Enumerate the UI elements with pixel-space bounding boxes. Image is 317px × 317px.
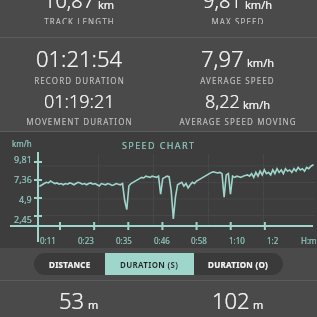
staticText: TRACK LENGTH [44,16,115,24]
staticText: m [253,297,264,312]
staticText: km/h [243,97,271,112]
staticText: 0:58 [191,235,207,246]
staticText: 102 [212,285,250,315]
staticText: DURATION (O) [208,259,269,270]
staticText: km/h [12,138,32,149]
staticText: 0:46 [154,235,170,246]
staticText: 0:23 [78,235,94,246]
staticText: 9,81 [203,0,242,14]
button[interactable]: DISTANCE [34,253,105,275]
staticText: 0:11 [40,235,56,246]
staticText: DISTANCE [49,259,91,270]
staticText: DURATION (S) [120,259,179,270]
staticText: 1:2 [267,235,279,246]
staticText: 8,22 [205,89,240,114]
staticText: AVERAGE SPEED MOVING [179,116,297,127]
staticText: 01:19:21 [44,89,115,114]
button[interactable]: DURATION (O) [194,253,283,275]
staticText: 0:35 [116,235,132,246]
button[interactable]: DURATION (S) [105,253,194,275]
staticText: MOVEMENT DURATION [26,116,133,127]
staticText: 2,45 [14,213,32,225]
staticText: SPEED CHART [122,139,196,151]
staticText: 7,97 [201,43,244,73]
staticText: 53 [59,285,85,315]
staticText: 10,87 [44,0,95,14]
staticText: km/h [245,0,273,12]
staticText: H:m [301,235,317,246]
staticText: m [88,297,99,312]
staticText: 7,36 [14,173,32,185]
staticText: 9,81 [14,153,32,165]
staticText: km [98,0,115,12]
staticText: MAX SPEED [211,16,265,24]
staticText: RECORD DURATION [34,75,125,86]
staticText: AVERAGE SPEED [200,75,275,86]
staticText: 4,9 [19,193,32,205]
staticText: 1:10 [229,235,245,246]
staticText: km/h [247,55,275,70]
staticText: 01:21:54 [36,43,123,73]
